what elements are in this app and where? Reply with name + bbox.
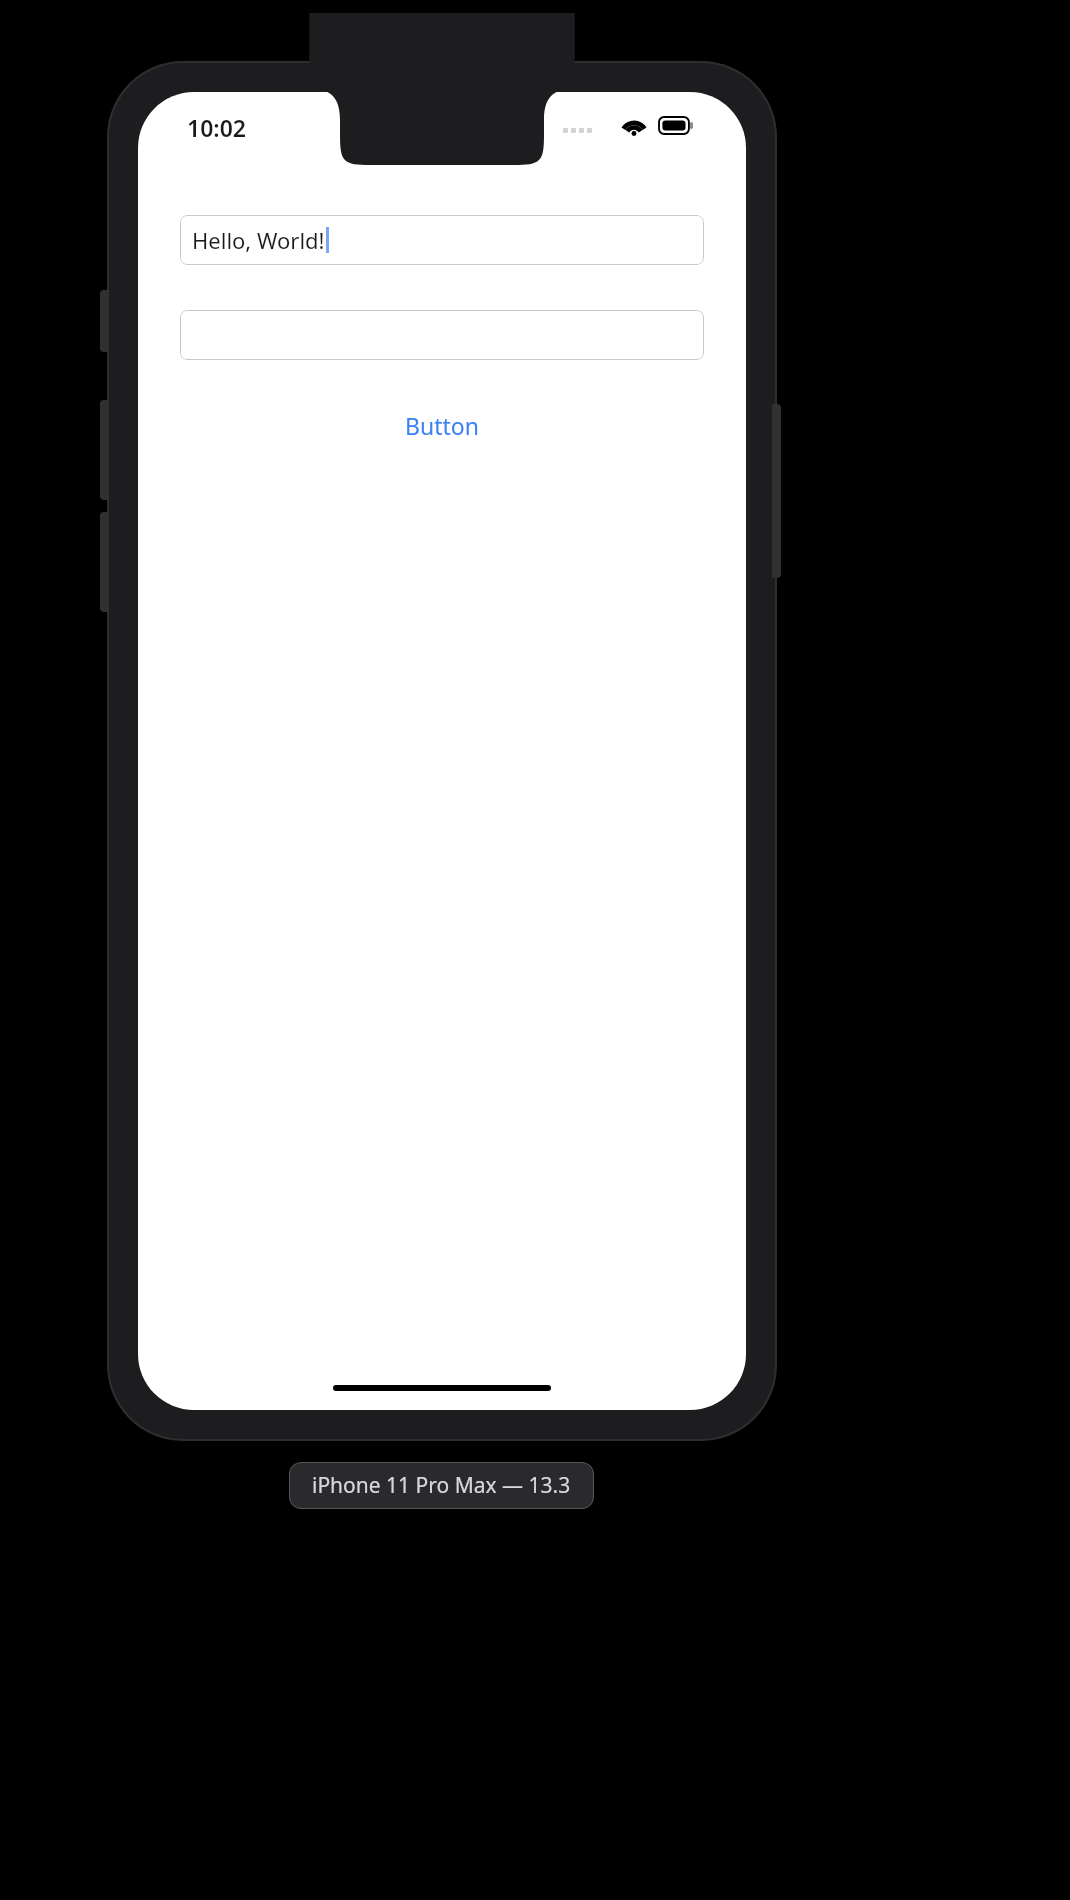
other: Battery full — [659, 117, 693, 134]
staticText: Hello, World! — [192, 225, 325, 255]
other: Wi-Fi — [621, 116, 647, 135]
button[interactable]: Hello, World! — [180, 215, 704, 265]
button[interactable]: Button — [391, 404, 493, 447]
button[interactable] — [180, 310, 704, 360]
staticText: iPhone 11 Pro Max — 13.3 — [312, 1471, 571, 1500]
staticText: 10:02 — [187, 112, 246, 143]
staticText: Button — [405, 410, 479, 441]
button[interactable]: iPhone 11 Pro Max — 13.3 — [289, 1462, 594, 1509]
